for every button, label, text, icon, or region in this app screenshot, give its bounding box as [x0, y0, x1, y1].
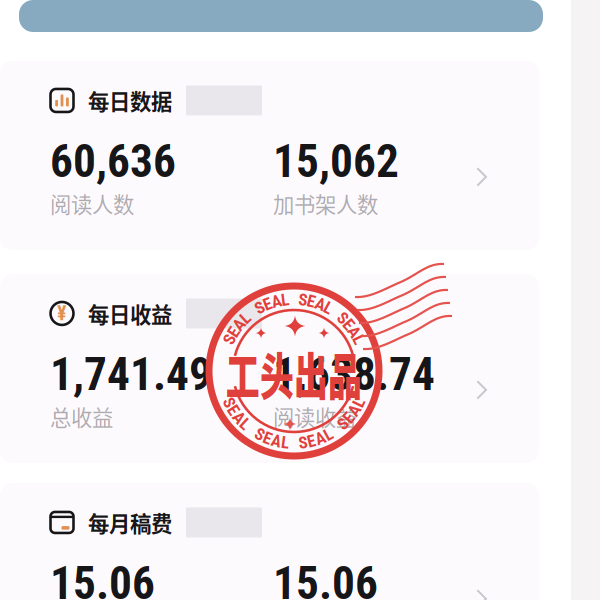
staticText: 1,638.74 — [273, 348, 435, 401]
staticText — [250, 302, 254, 323]
staticText: 工头出品 — [184, 333, 404, 413]
staticText: S — [225, 329, 234, 350]
staticText: L — [324, 424, 332, 444]
staticText: A — [271, 291, 281, 311]
staticText: 阅读人数 — [50, 188, 134, 219]
staticText: L — [281, 432, 289, 453]
staticText: 每月稿费 — [88, 507, 172, 538]
staticText: A — [349, 321, 359, 342]
staticText: L — [355, 392, 363, 413]
button[interactable]: ¥ — [0, 274, 539, 463]
staticText: L — [241, 308, 249, 328]
staticText — [292, 289, 296, 309]
staticText: S — [255, 424, 264, 444]
staticText: A — [234, 314, 244, 335]
staticText: 15.06 — [50, 557, 155, 600]
staticText: L — [281, 289, 289, 310]
staticText: S — [298, 432, 307, 453]
staticText: E — [344, 407, 353, 428]
staticText: S — [298, 289, 307, 310]
staticText: E — [263, 428, 272, 448]
button[interactable]: 每日数据 — [0, 61, 539, 250]
staticText: 阅读收益 — [273, 401, 357, 432]
staticText — [334, 419, 338, 440]
staticText: E — [307, 431, 316, 451]
staticText: 60,636 — [50, 135, 176, 188]
staticText: E — [229, 400, 238, 420]
staticText: 15.06 — [273, 557, 378, 600]
staticText: L — [324, 297, 332, 318]
staticText: A — [234, 407, 244, 428]
staticText: E — [344, 314, 353, 335]
staticText — [334, 302, 338, 323]
staticText: A — [315, 294, 325, 314]
staticText: S — [338, 308, 347, 328]
staticText: 15,062 — [273, 135, 399, 188]
staticText: E — [263, 294, 272, 314]
staticText: ¥ — [57, 302, 67, 325]
staticText: 1,741.49 — [50, 348, 212, 401]
staticText: 总收益 — [50, 401, 113, 432]
button[interactable]: 每月稿费 — [0, 483, 539, 600]
staticText: L — [241, 414, 249, 434]
staticText: A — [315, 428, 325, 448]
staticText: E — [307, 291, 316, 311]
staticText: A — [271, 431, 281, 451]
staticText: S — [338, 414, 347, 434]
staticText: S — [255, 297, 264, 318]
staticText: L — [355, 329, 363, 350]
staticText: 每日数据 — [88, 85, 172, 116]
staticText: 每日收益 — [88, 298, 172, 329]
staticText: A — [349, 400, 359, 420]
staticText: E — [229, 321, 238, 342]
staticText — [292, 433, 296, 453]
staticText: S — [225, 392, 234, 413]
staticText: 加书架人数 — [273, 188, 378, 219]
